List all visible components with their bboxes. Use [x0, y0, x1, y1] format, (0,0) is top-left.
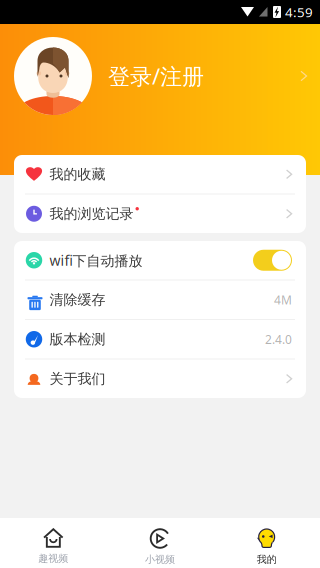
- button[interactable]: 登录/注册: [0, 24, 320, 175]
- staticText: 2.4.0: [265, 331, 292, 347]
- button[interactable]: 清除缓存: [14, 280, 306, 319]
- button[interactable]: 版本检测: [14, 320, 306, 358]
- staticText: 我的浏览记录: [49, 205, 133, 222]
- staticText: wifi下自动播放: [49, 251, 142, 270]
- staticText: 登录/注册: [108, 61, 204, 91]
- staticText: 我的: [257, 553, 277, 566]
- staticText: 版本检测: [49, 330, 105, 348]
- staticText: 小视频: [145, 553, 175, 566]
- staticText: 4:59: [285, 3, 313, 21]
- staticText: 关于我们: [49, 370, 105, 387]
- staticText: 4M: [274, 292, 292, 308]
- staticText: 趣视频: [38, 552, 68, 565]
- staticText: 清除缓存: [49, 291, 105, 308]
- button[interactable]: 趣视频: [0, 518, 107, 568]
- button[interactable]: 我的: [213, 518, 320, 568]
- button[interactable]: wifi下自动播放: [14, 241, 306, 279]
- button[interactable]: 关于我们: [14, 359, 306, 398]
- button[interactable]: 我的收藏: [14, 155, 306, 193]
- button[interactable]: 小视频: [107, 518, 213, 568]
- staticText: 我的收藏: [49, 165, 105, 183]
- button[interactable]: 我的浏览记录: [14, 194, 306, 233]
